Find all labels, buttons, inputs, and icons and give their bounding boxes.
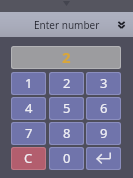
button[interactable]: 3	[87, 73, 120, 94]
staticText: C	[24, 149, 33, 167]
button[interactable]: Enter number	[0, 12, 133, 37]
staticText: 6	[100, 99, 108, 117]
staticText: 0	[63, 149, 71, 167]
staticText: 3	[100, 74, 108, 92]
staticText: 1	[25, 74, 33, 92]
button[interactable]: 0	[50, 148, 83, 169]
staticText: 2	[62, 47, 71, 67]
button[interactable]: 7	[12, 123, 45, 144]
staticText: 4	[25, 99, 33, 117]
button[interactable]: C	[12, 148, 45, 169]
staticText: 8	[63, 124, 71, 142]
staticText: 9	[100, 124, 108, 142]
button[interactable]: 2	[50, 73, 83, 94]
staticText: Enter number	[34, 18, 100, 32]
staticText: 2	[63, 74, 71, 92]
button[interactable]: 8	[50, 123, 83, 144]
other: Expand	[118, 21, 125, 29]
button[interactable]: 9	[87, 123, 120, 144]
button[interactable]: 1	[12, 73, 45, 94]
button[interactable]: 4	[12, 98, 45, 119]
other: Collapse	[63, 1, 70, 6]
button[interactable]: Enter	[87, 148, 120, 169]
staticText: 7	[25, 124, 33, 142]
staticText: 5	[63, 99, 71, 117]
button[interactable]: 6	[87, 98, 120, 119]
button[interactable]: 5	[50, 98, 83, 119]
